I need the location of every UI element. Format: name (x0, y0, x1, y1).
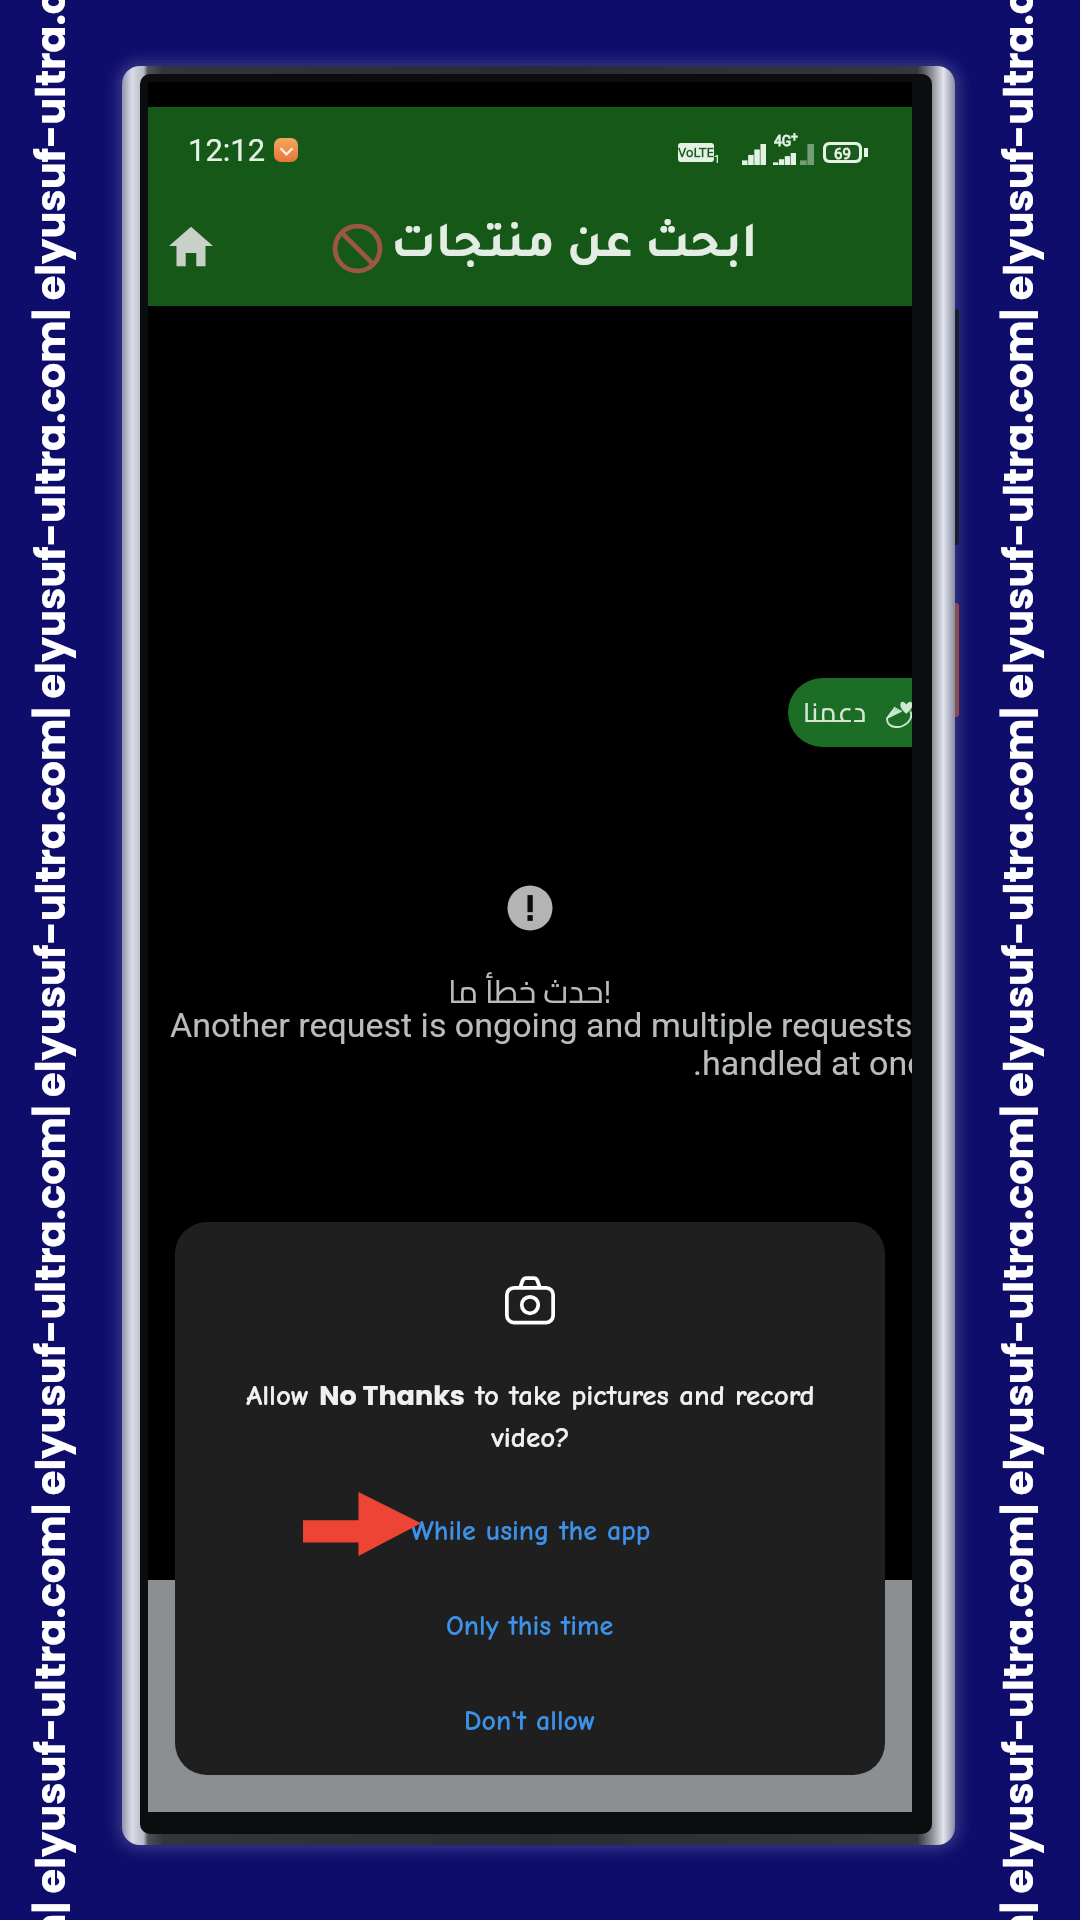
button[interactable]: دعمنا (788, 678, 912, 747)
staticText: 69 (834, 145, 851, 160)
staticText: حدث خطأ ما! (448, 961, 612, 1021)
staticText: elyusuf-ultra.com| elyusuf-ultra.com| el… (991, 0, 1047, 1920)
staticText: Another request is ongoing and multiple … (170, 1005, 912, 1045)
button[interactable]: Home (154, 209, 228, 283)
button[interactable]: Don't allow (175, 1692, 885, 1750)
staticText: VoLTE (678, 145, 714, 160)
staticText: Don't allow (464, 1705, 596, 1737)
other: Support us (884, 697, 912, 729)
staticText: 1 (714, 153, 721, 166)
staticText: Only this time (446, 1610, 614, 1642)
staticText: .handled at once (693, 1043, 912, 1083)
staticText: + (791, 130, 798, 144)
button[interactable]: Only this time (175, 1597, 885, 1655)
staticText: 12:12 (188, 132, 266, 168)
staticText: دعمنا (803, 687, 867, 738)
staticText: 4G (774, 133, 792, 149)
staticText: While using the app (410, 1515, 651, 1547)
staticText: Allow No Thanks to take pictures and rec… (238, 1377, 823, 1455)
staticText: ابحث عن منتجات (391, 224, 757, 274)
staticText: elyusuf-ultra.com| elyusuf-ultra.com| el… (23, 0, 79, 1920)
button[interactable]: While using the app (175, 1502, 885, 1560)
